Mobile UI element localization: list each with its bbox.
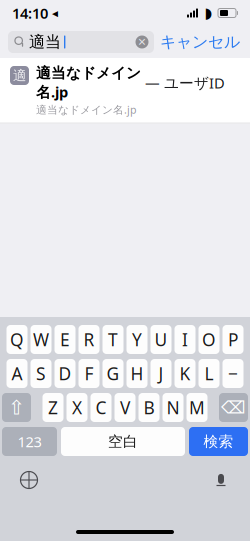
button[interactable]: −: [222, 359, 243, 388]
staticText: F: [84, 362, 93, 385]
staticText: キャンセル: [160, 32, 240, 52]
button[interactable]: Next keyboard: [14, 465, 44, 495]
button[interactable]: K: [174, 359, 195, 388]
staticText: M: [189, 396, 205, 419]
button[interactable]: V: [114, 393, 135, 422]
staticText: I: [182, 328, 188, 351]
button[interactable]: L: [198, 359, 219, 388]
staticText: D: [58, 362, 71, 385]
button[interactable]: J: [150, 359, 171, 388]
staticText: V: [120, 396, 130, 419]
staticText: ✕: [137, 36, 146, 48]
staticText: L: [204, 362, 213, 385]
staticText: 適: [13, 67, 26, 84]
button[interactable]: Z: [42, 393, 63, 422]
staticText: G: [106, 362, 119, 385]
button[interactable]: S: [30, 359, 51, 388]
button[interactable]: B: [138, 393, 159, 422]
staticText: — ユーザID: [141, 73, 225, 92]
staticText: R: [83, 328, 94, 351]
button[interactable]: 空白: [61, 427, 185, 456]
staticText: 適当なドメイン名.jp: [36, 64, 141, 101]
button[interactable]: M: [186, 393, 207, 422]
staticText: U: [154, 328, 167, 351]
staticText: T: [108, 328, 118, 351]
button[interactable]: H: [126, 359, 147, 388]
staticText: O: [202, 328, 216, 351]
staticText: ⇧: [8, 396, 25, 419]
staticText: −: [228, 362, 238, 385]
button[interactable]: A: [6, 359, 27, 388]
staticText: A: [11, 362, 22, 385]
button[interactable]: R: [78, 325, 99, 354]
staticText: Y: [132, 328, 142, 351]
staticText: E: [60, 328, 70, 351]
button[interactable]: Clear text: [132, 32, 152, 52]
button[interactable]: T: [102, 325, 123, 354]
button[interactable]: U: [150, 325, 171, 354]
staticText: S: [36, 362, 46, 385]
button[interactable]: Dictate: [206, 465, 236, 495]
staticText: W: [33, 328, 49, 351]
staticText: N: [166, 396, 179, 419]
button[interactable]: I: [174, 325, 195, 354]
button[interactable]: Delete: [219, 393, 248, 422]
staticText: X: [72, 396, 82, 419]
staticText: C: [95, 396, 106, 419]
button[interactable]: G: [102, 359, 123, 388]
button[interactable]: W: [30, 325, 51, 354]
button[interactable]: Y: [126, 325, 147, 354]
button[interactable]: キャンセル: [154, 29, 246, 55]
button[interactable]: 検索: [189, 427, 248, 456]
staticText: 14:10: [12, 3, 48, 23]
button[interactable]: E: [54, 325, 75, 354]
staticText: H: [130, 362, 143, 385]
staticText: ⌫: [221, 398, 246, 417]
staticText: 適当: [29, 32, 61, 52]
button[interactable]: P: [222, 325, 243, 354]
button[interactable]: 適: [0, 58, 250, 123]
staticText: 123: [17, 432, 41, 451]
button[interactable]: Q: [6, 325, 27, 354]
staticText: 検索: [203, 432, 233, 450]
staticText: K: [179, 362, 190, 385]
staticText: ◂: [48, 6, 58, 20]
staticText: 空白: [108, 432, 138, 450]
staticText: 適当なドメイン名.jp: [36, 102, 137, 117]
staticText: P: [228, 328, 238, 351]
button[interactable]: O: [198, 325, 219, 354]
staticText: J: [158, 362, 163, 385]
button[interactable]: F: [78, 359, 99, 388]
staticText: Q: [10, 328, 24, 351]
button[interactable]: X: [66, 393, 87, 422]
button[interactable]: N: [162, 393, 183, 422]
button[interactable]: Shift: [2, 393, 31, 422]
button[interactable]: C: [90, 393, 111, 422]
staticText: ◗: [204, 5, 212, 21]
button[interactable]: 123: [2, 427, 57, 456]
button[interactable]: D: [54, 359, 75, 388]
staticText: B: [143, 396, 154, 419]
staticText: Z: [48, 396, 58, 419]
